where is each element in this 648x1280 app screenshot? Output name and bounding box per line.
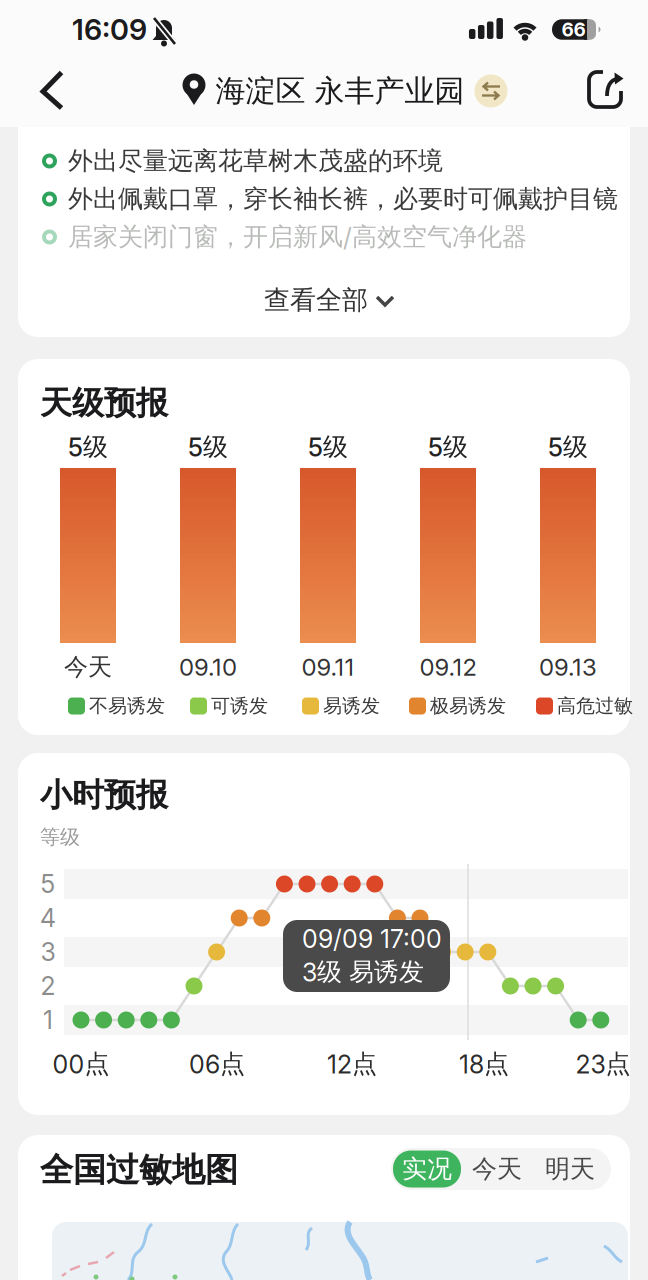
staticText: 00点 <box>52 1048 109 1080</box>
staticText: 16:09 <box>72 12 147 47</box>
staticText: 3 <box>40 937 55 967</box>
staticText: 2 <box>40 971 55 1001</box>
staticText: 查看全部 <box>264 284 368 316</box>
staticText: 5级 <box>68 431 108 463</box>
staticText: 明天 <box>545 1153 595 1185</box>
staticText: 今天 <box>472 1153 522 1185</box>
staticText: 海淀区 永丰产业园 <box>215 72 464 110</box>
staticText: 09.13 <box>539 652 597 681</box>
staticText: 5级 <box>548 431 588 463</box>
staticText: 极易诱发 <box>430 694 506 718</box>
staticText: 天级预报 <box>40 383 168 423</box>
staticText: 不易诱发 <box>89 694 165 718</box>
staticText: 今天 <box>64 652 112 682</box>
staticText: 外出佩戴口罩，穿长袖长裤，必要时可佩戴护目镜 <box>68 183 618 215</box>
staticText: 09/09 17:00 <box>302 924 442 954</box>
staticText: 可诱发 <box>211 694 268 718</box>
staticText: 66 <box>561 18 585 41</box>
staticText: 实况 <box>402 1153 452 1185</box>
staticText: 居家关闭门窗，开启新风/高效空气净化器 <box>68 221 527 253</box>
staticText: 易诱发 <box>323 694 380 718</box>
staticText: 等级 <box>40 824 80 850</box>
staticText: 18点 <box>459 1048 509 1080</box>
staticText: 1 <box>43 1005 53 1035</box>
staticText: 09.10 <box>179 652 237 681</box>
staticText: 4 <box>40 903 56 933</box>
staticText: 全国过敏地图 <box>40 1149 238 1191</box>
staticText: 5级 <box>428 431 468 463</box>
staticText: 09.12 <box>419 652 476 681</box>
staticText: 5级 <box>308 431 348 463</box>
staticText: 5级 <box>188 431 228 463</box>
staticText: 外出尽量远离花草树木茂盛的环境 <box>68 145 443 177</box>
staticText: 小时预报 <box>40 775 168 815</box>
staticText: 09.11 <box>301 652 354 681</box>
staticText: 06点 <box>189 1048 245 1080</box>
staticText: 高危过敏 <box>557 694 633 718</box>
staticText: 5 <box>40 869 55 899</box>
staticText: 3级 易诱发 <box>302 956 424 988</box>
staticText: 23点 <box>575 1048 630 1080</box>
staticText: 12点 <box>327 1048 377 1080</box>
